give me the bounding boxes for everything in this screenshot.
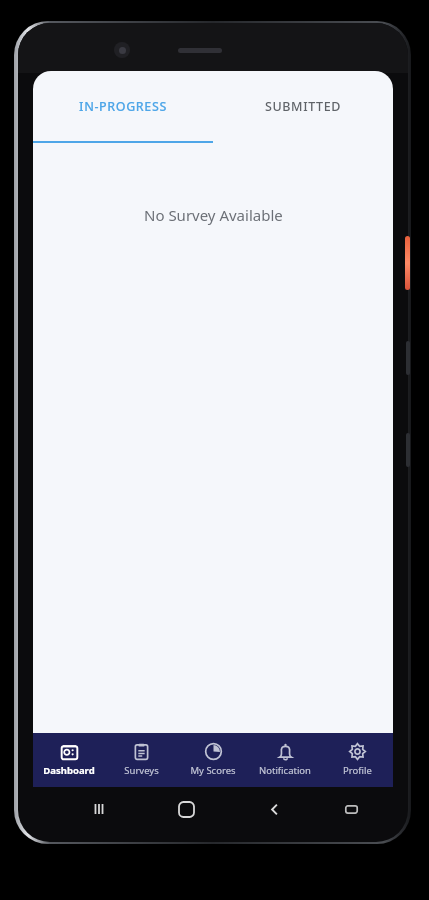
staticText: Dashboard	[43, 764, 95, 777]
staticText: Profile	[343, 764, 372, 777]
other: Power	[405, 236, 410, 290]
button[interactable]: Notification	[249, 733, 321, 787]
staticText: No Survey Available	[144, 205, 283, 225]
button[interactable]: My Scores	[177, 733, 249, 787]
staticText: IN-PROGRESS	[79, 98, 167, 115]
button[interactable]: Screenshot	[323, 794, 380, 824]
button[interactable]: Back	[246, 794, 303, 824]
staticText: My Scores	[190, 764, 236, 777]
staticText: SUBMITTED	[265, 98, 341, 115]
button[interactable]: Dashboard	[33, 733, 105, 787]
staticText: Notification	[259, 764, 311, 777]
button[interactable]: Home	[158, 794, 215, 824]
button[interactable]: Surveys	[105, 733, 177, 787]
button[interactable]: IN-PROGRESS	[33, 71, 213, 141]
staticText: Surveys	[124, 764, 159, 777]
button[interactable]: SUBMITTED	[213, 71, 393, 141]
button[interactable]: Profile	[321, 733, 393, 787]
button[interactable]: Recent apps	[70, 794, 127, 824]
